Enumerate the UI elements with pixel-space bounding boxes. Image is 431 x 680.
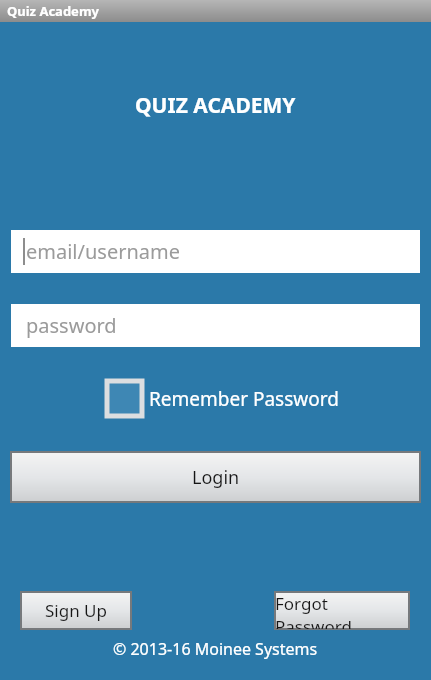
staticText: Login: [192, 465, 240, 490]
staticText: email/username: [26, 238, 180, 265]
staticText: Remember Password: [149, 386, 339, 412]
staticText: © 2013-16 Moinee Systems: [113, 638, 318, 660]
button[interactable]: Forgot Password: [275, 592, 409, 629]
button[interactable]: Sign Up: [21, 592, 131, 629]
staticText: Forgot Password: [275, 592, 409, 629]
staticText: password: [26, 312, 117, 339]
button[interactable]: password: [11, 304, 420, 347]
button[interactable]: email/username: [11, 230, 420, 273]
staticText: QUIZ ACADEMY: [135, 91, 296, 120]
button[interactable]: Login: [11, 452, 420, 502]
staticText: Quiz Academy: [7, 2, 99, 20]
button[interactable]: Remember Password: [107, 381, 339, 416]
staticText: Sign Up: [45, 599, 107, 622]
